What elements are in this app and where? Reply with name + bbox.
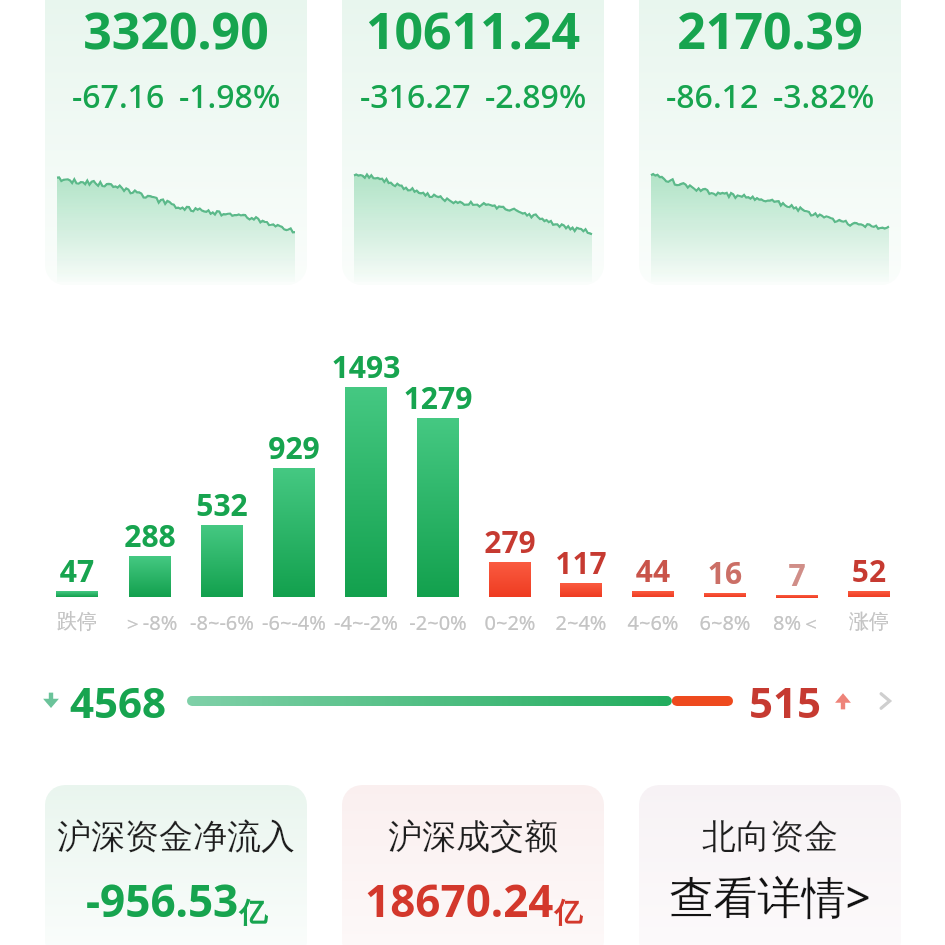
button[interactable]: 沪深成交额 (342, 785, 604, 945)
staticText: 47 (17, 550, 137, 591)
button[interactable]: 北向资金 (639, 785, 901, 945)
staticText: 4~6% (593, 609, 713, 636)
other: Declining (40, 690, 62, 712)
staticText: 532 (162, 484, 282, 525)
staticText: -86.12 (666, 74, 759, 118)
staticText: 279 (450, 521, 570, 562)
staticText: 52 (809, 550, 929, 591)
staticText: 6~8% (665, 609, 785, 636)
staticText: ＞-8% (90, 609, 210, 636)
staticText: 亿 (554, 895, 582, 930)
staticText: 跌停 (17, 609, 137, 634)
staticText: 288 (90, 515, 210, 556)
staticText: -956.53 (86, 870, 239, 930)
staticText: -3.82% (773, 74, 875, 118)
staticText: 3320.90 (45, 0, 307, 64)
staticText: 8%＜ (737, 609, 857, 636)
staticText: 4568 (70, 673, 167, 730)
staticText: -316.27 (360, 74, 471, 118)
staticText: 查看详情> (639, 866, 901, 926)
staticText: 10611.24 (342, 0, 604, 64)
staticText: 2~4% (521, 609, 641, 636)
staticText: 7 (737, 554, 857, 595)
button[interactable]: 10611.24 (342, 0, 604, 285)
staticText: -1.98% (179, 74, 281, 118)
staticText: 117 (521, 542, 641, 583)
button[interactable]: Declining (40, 672, 905, 730)
staticText: 1279 (378, 377, 498, 418)
other: Advancing (832, 690, 854, 712)
staticText: 929 (234, 427, 354, 468)
staticText: 18670.24 (365, 870, 554, 930)
staticText: 44 (593, 550, 713, 591)
staticText: -6~-4% (234, 609, 354, 636)
staticText: 北向资金 (639, 815, 901, 858)
staticText: -2~0% (378, 609, 498, 636)
button[interactable]: 2170.39 (639, 0, 901, 285)
staticText: 2170.39 (639, 0, 901, 64)
staticText: 16 (665, 552, 785, 593)
staticText: 亿 (239, 895, 267, 930)
staticText: 515 (749, 673, 822, 730)
staticText: 沪深成交额 (342, 815, 604, 858)
button[interactable]: 沪深资金净流入 (45, 785, 307, 945)
staticText: 沪深资金净流入 (45, 815, 307, 858)
staticText: -67.16 (72, 74, 165, 118)
staticText: 涨停 (809, 609, 929, 634)
other: More details (872, 688, 898, 714)
staticText: 1493 (306, 346, 426, 387)
staticText: -4~-2% (306, 609, 426, 636)
staticText: 0~2% (450, 609, 570, 636)
staticText: -2.89% (485, 74, 587, 118)
button[interactable]: 3320.90 (45, 0, 307, 285)
staticText: -8~-6% (162, 609, 282, 636)
